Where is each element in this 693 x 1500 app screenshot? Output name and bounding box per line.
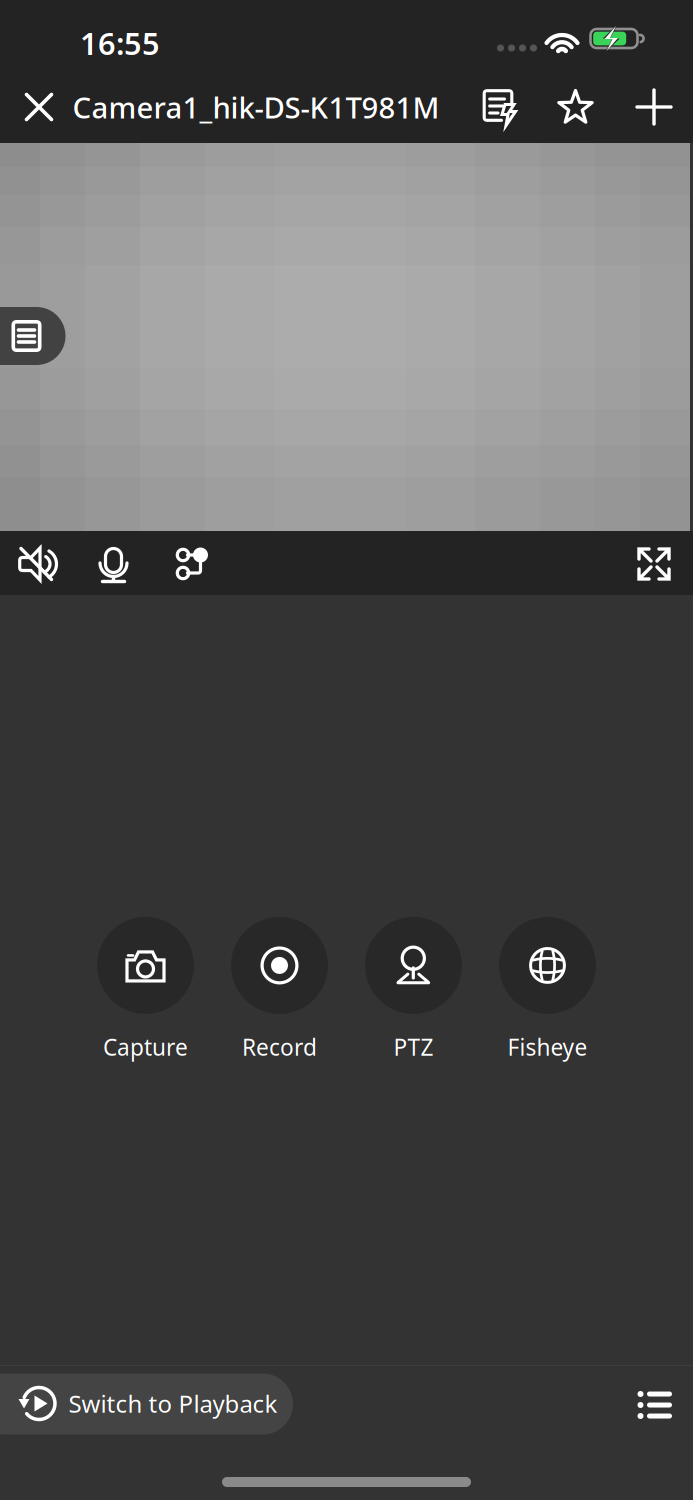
button[interactable]: Channel list — [0, 307, 65, 365]
staticText: PTZ — [393, 1032, 433, 1062]
button[interactable]: Close — [4, 74, 74, 140]
button[interactable]: Mute — [5, 533, 67, 595]
button[interactable]: Fisheye — [499, 914, 596, 1064]
button[interactable]: Share — [161, 533, 223, 595]
staticText: Fisheye — [507, 1032, 587, 1062]
button[interactable]: Full screen — [623, 533, 685, 595]
staticText: Camera1_hik-DS-K1T981M — [72, 87, 439, 126]
button[interactable]: Switch to Playback — [0, 1373, 294, 1434]
staticText: 16:55 — [80, 23, 160, 63]
button[interactable]: PTZ — [365, 914, 462, 1064]
button[interactable]: Capture — [97, 914, 194, 1064]
staticText: Capture — [103, 1032, 188, 1062]
button[interactable]: Favorite — [548, 80, 604, 136]
button[interactable]: Add — [626, 79, 682, 135]
button[interactable]: Log — [472, 80, 528, 136]
staticText: Switch to Playback — [68, 1388, 277, 1419]
staticText: Record — [242, 1032, 317, 1062]
button[interactable]: Microphone — [83, 533, 145, 595]
button[interactable]: List — [624, 1375, 684, 1435]
button[interactable]: Record — [231, 914, 328, 1064]
